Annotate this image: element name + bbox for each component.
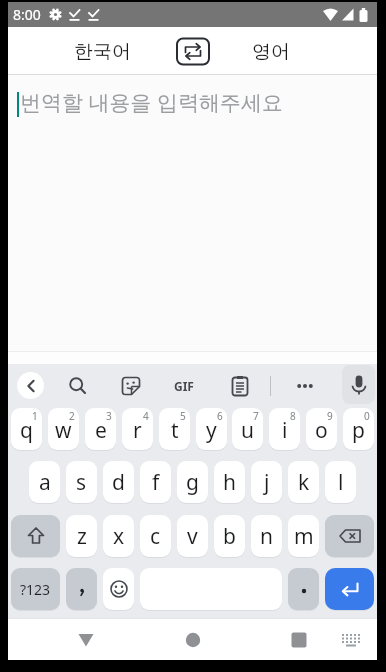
staticText: 0 <box>364 409 370 423</box>
staticText: r <box>133 416 142 445</box>
staticText: 8:00 <box>13 5 41 24</box>
staticText: a <box>39 468 51 497</box>
staticText: 6 <box>217 409 223 423</box>
button[interactable]: d <box>103 461 134 503</box>
button[interactable]: 영어 <box>248 36 294 68</box>
button[interactable]: c <box>140 515 171 557</box>
button[interactable] <box>66 374 90 398</box>
button[interactable]: k <box>288 461 319 503</box>
button[interactable]: u <box>232 408 263 450</box>
button[interactable] <box>11 515 60 557</box>
button[interactable]: t <box>159 408 190 450</box>
staticText: 2 <box>69 409 75 423</box>
staticText: n <box>260 522 273 551</box>
staticText: 5 <box>180 409 186 423</box>
button[interactable] <box>176 38 210 65</box>
staticText: 3 <box>106 409 112 423</box>
button[interactable]: z <box>66 515 97 557</box>
button[interactable] <box>342 365 375 404</box>
button[interactable]: j <box>251 461 282 503</box>
staticText: h <box>223 468 236 497</box>
staticText: z <box>77 522 87 551</box>
button[interactable] <box>119 374 143 398</box>
staticText: v <box>187 522 198 551</box>
button[interactable] <box>325 515 374 557</box>
button[interactable] <box>103 568 134 610</box>
button[interactable] <box>228 374 252 398</box>
staticText: s <box>76 468 87 497</box>
button[interactable]: b <box>214 515 245 557</box>
button[interactable]: m <box>288 515 319 557</box>
button[interactable]: ?123 <box>11 568 60 610</box>
button[interactable]: e <box>85 408 116 450</box>
staticText: m <box>294 522 314 551</box>
button[interactable]: v <box>177 515 208 557</box>
staticText: 8 <box>290 409 296 423</box>
staticText: o <box>315 416 328 445</box>
staticText: 번역할 내용을 입력해주세요 <box>20 88 283 117</box>
button[interactable]: GIF <box>170 374 198 398</box>
button[interactable]: x <box>103 515 134 557</box>
button[interactable]: y <box>196 408 227 450</box>
staticText: 한국어 <box>74 40 131 64</box>
staticText: l <box>338 468 344 497</box>
button[interactable]: 한국어 <box>70 36 135 68</box>
staticText: j <box>264 468 270 497</box>
staticText: q <box>20 416 33 445</box>
button[interactable] <box>70 624 101 655</box>
staticText: f <box>152 468 160 497</box>
button[interactable]: f <box>140 461 171 503</box>
staticText: x <box>113 522 125 551</box>
staticText: ?123 <box>20 580 51 599</box>
button[interactable]: i <box>269 408 300 450</box>
button[interactable]: g <box>177 461 208 503</box>
button[interactable]: h <box>214 461 245 503</box>
button[interactable]: o <box>306 408 337 450</box>
button[interactable] <box>288 568 319 610</box>
staticText: y <box>206 416 217 445</box>
button[interactable]: n <box>251 515 282 557</box>
button[interactable] <box>66 568 97 610</box>
staticText: 9 <box>327 409 333 423</box>
staticText: g <box>186 468 199 497</box>
staticText: 4 <box>143 409 149 423</box>
staticText: b <box>223 522 236 551</box>
button[interactable] <box>293 374 317 398</box>
staticText: c <box>150 522 161 551</box>
button[interactable] <box>177 624 208 655</box>
staticText: u <box>241 416 254 445</box>
button[interactable]: a <box>29 461 60 503</box>
staticText: k <box>298 468 310 497</box>
button[interactable] <box>325 568 374 610</box>
button[interactable] <box>17 372 44 399</box>
staticText: i <box>282 416 288 445</box>
button[interactable]: r <box>122 408 153 450</box>
staticText: e <box>95 416 107 445</box>
staticText: GIF <box>174 378 194 394</box>
button[interactable]: w <box>48 408 79 450</box>
staticText: 영어 <box>252 40 290 64</box>
button[interactable]: l <box>325 461 356 503</box>
button[interactable]: p <box>343 408 374 450</box>
button[interactable]: s <box>66 461 97 503</box>
staticText: p <box>352 416 365 445</box>
button[interactable] <box>283 624 314 655</box>
staticText: t <box>171 416 179 445</box>
staticText: 7 <box>253 409 259 423</box>
staticText: 1 <box>32 409 38 423</box>
staticText: w <box>55 416 72 445</box>
button[interactable]: q <box>11 408 42 450</box>
button[interactable] <box>335 624 366 655</box>
staticText: d <box>112 468 125 497</box>
